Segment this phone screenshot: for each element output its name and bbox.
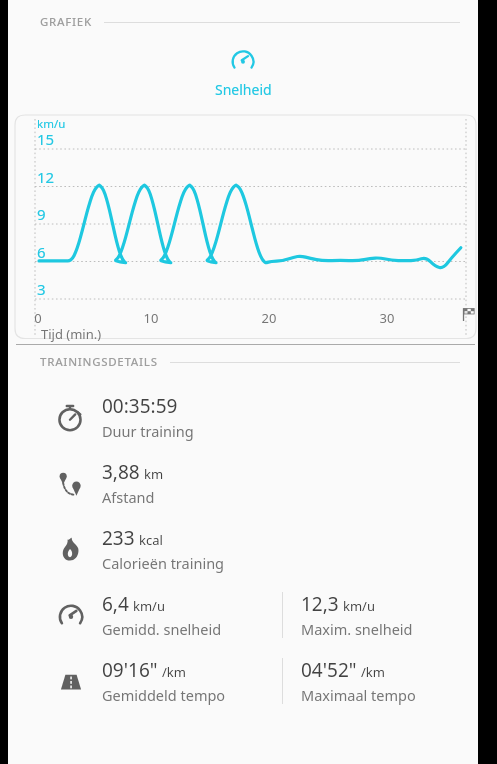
staticText: 6,4 <box>102 591 129 617</box>
staticText: 30 <box>377 309 397 327</box>
staticText: 00:35:59 <box>102 393 178 419</box>
staticText: Maxim. snelheid <box>301 619 413 639</box>
button[interactable]: Gemidd. snelheid, Maxim. snelheid <box>8 582 478 648</box>
staticText: 04'52" <box>301 657 357 683</box>
staticText: kcal <box>139 531 163 549</box>
staticText: /km <box>162 663 186 681</box>
staticText: 0 <box>28 309 48 327</box>
staticText: 6 <box>37 242 46 262</box>
staticText: Afstand <box>102 487 155 507</box>
staticText: 12,3 <box>301 591 339 617</box>
staticText: 9 <box>37 204 46 224</box>
staticText: km/u <box>133 597 165 615</box>
staticText: 20 <box>259 309 279 327</box>
staticText: Tijd (min.) <box>41 325 102 343</box>
staticText: 09'16" <box>102 657 158 683</box>
button[interactable]: Afstand <box>8 450 478 516</box>
staticText: 15 <box>37 129 55 149</box>
button[interactable]: Calorieën training <box>8 516 478 582</box>
staticText: 10 <box>141 309 161 327</box>
staticText: Maximaal tempo <box>301 685 416 705</box>
staticText: 3,88 <box>102 459 140 485</box>
button[interactable]: Gemiddeld tempo, Maximaal tempo <box>8 648 478 714</box>
staticText: 12 <box>37 167 55 187</box>
staticText: Gemidd. snelheid <box>102 619 222 639</box>
button[interactable]: Duur training <box>8 384 478 450</box>
staticText: Calorieën training <box>102 553 225 573</box>
staticText: 233 <box>102 525 135 551</box>
staticText: 3 <box>37 279 46 299</box>
staticText: Gemiddeld tempo <box>102 685 226 705</box>
staticText: TRAININGSDETAILS <box>40 354 158 370</box>
staticText: km/u <box>343 597 375 615</box>
staticText: km/u <box>37 116 66 132</box>
staticText: GRAFIEK <box>40 14 92 30</box>
staticText: Duur training <box>102 421 194 441</box>
staticText: km <box>144 465 164 483</box>
staticText: /km <box>361 663 385 681</box>
button[interactable]: Snelheid grafiek <box>8 46 478 99</box>
staticText: Snelheid <box>215 80 272 99</box>
